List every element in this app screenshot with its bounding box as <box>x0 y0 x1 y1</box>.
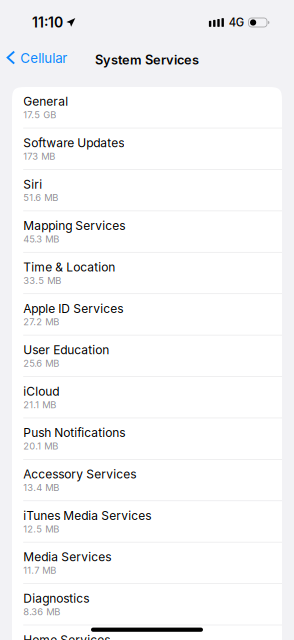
button[interactable]: Cellular <box>0 45 75 74</box>
staticText: General <box>23 94 68 109</box>
staticText: Software Updates <box>23 136 124 150</box>
staticText: Accessory Services <box>23 467 136 481</box>
staticText: 27.2 MB <box>23 316 59 328</box>
staticText: 4G <box>229 16 244 29</box>
staticText: iCloud <box>23 384 59 399</box>
staticText: 21.1 MB <box>23 399 56 410</box>
button[interactable]: Time & Location <box>12 253 282 294</box>
staticText: 17.5 GB <box>23 109 56 120</box>
button[interactable]: User Education <box>12 335 282 377</box>
staticText: 20.1 MB <box>23 440 58 452</box>
staticText: 25.6 MB <box>23 358 59 369</box>
staticText: Media Services <box>23 550 111 564</box>
button[interactable]: Home Services <box>12 625 282 640</box>
button[interactable]: Push Notifications <box>12 418 282 460</box>
staticText: Siri <box>23 177 42 191</box>
staticText: 11:10 <box>32 14 63 31</box>
button[interactable]: Mapping Services <box>12 211 282 253</box>
staticText: Cellular <box>20 50 67 66</box>
staticText: 173 MB <box>23 151 55 162</box>
staticText: Mapping Services <box>23 218 125 233</box>
staticText: 33.5 MB <box>23 275 61 286</box>
staticText: 51.6 MB <box>23 192 58 203</box>
button[interactable]: Media Services <box>12 542 282 584</box>
button[interactable]: Apple ID Services <box>12 294 282 335</box>
button[interactable]: iTunes Media Services <box>12 501 282 542</box>
staticText: Home Services <box>23 632 110 640</box>
button[interactable]: iCloud <box>12 377 282 418</box>
button[interactable]: Software Updates <box>12 128 282 170</box>
staticText: iTunes Media Services <box>23 508 151 523</box>
staticText: 45.3 MB <box>23 233 59 245</box>
staticText: Apple ID Services <box>23 301 123 316</box>
staticText: User Education <box>23 343 109 357</box>
staticText: Time & Location <box>23 260 115 274</box>
staticText: Diagnostics <box>23 591 89 606</box>
staticText: 11.7 MB <box>23 565 56 576</box>
button[interactable]: Diagnostics <box>12 584 282 625</box>
button[interactable]: Accessory Services <box>12 460 282 501</box>
staticText: 12.5 MB <box>23 523 59 535</box>
button[interactable]: General <box>12 87 282 128</box>
staticText: 13.4 MB <box>23 482 59 493</box>
button[interactable]: Siri <box>12 170 282 211</box>
staticText: System Services <box>95 52 199 67</box>
staticText: 8.36 MB <box>23 606 60 617</box>
staticText: Push Notifications <box>23 425 125 440</box>
